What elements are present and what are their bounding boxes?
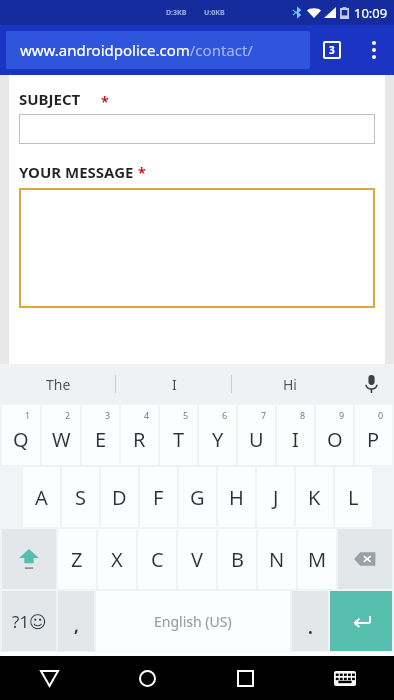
- staticText: 3: [329, 43, 335, 57]
- button[interactable]: Backspace: [338, 529, 392, 589]
- staticText: W: [52, 426, 71, 453]
- staticText: SUBJECT: [19, 89, 85, 109]
- staticText: Hi: [283, 375, 297, 394]
- staticText: 0: [378, 409, 384, 421]
- button[interactable]: B: [218, 529, 256, 589]
- button[interactable]: 7: [238, 405, 275, 465]
- button[interactable]: M: [298, 529, 336, 589]
- staticText: 5: [183, 409, 189, 421]
- staticText: B: [231, 546, 244, 573]
- staticText: A: [35, 484, 48, 511]
- button[interactable]: www.androidpolice.com/contact/: [6, 31, 310, 69]
- staticText: R: [133, 426, 146, 453]
- button[interactable]: Shift: [2, 529, 56, 589]
- staticText: F: [153, 484, 164, 511]
- button[interactable]: [19, 114, 375, 144]
- button[interactable]: I: [116, 364, 232, 404]
- staticText: E: [95, 426, 107, 453]
- staticText: K: [308, 484, 321, 511]
- staticText: N: [269, 546, 285, 573]
- staticText: 9: [339, 409, 345, 421]
- button[interactable]: Keyboard: [295, 656, 394, 700]
- staticText: P: [367, 426, 380, 453]
- button[interactable]: 0: [355, 405, 392, 465]
- staticText: 4: [144, 409, 150, 421]
- staticText: ?1☺: [12, 610, 47, 633]
- staticText: ,: [74, 614, 79, 637]
- button[interactable]: Voice input: [348, 364, 394, 404]
- button[interactable]: N: [258, 529, 296, 589]
- staticText: .: [308, 616, 313, 639]
- staticText: *: [138, 163, 146, 182]
- button[interactable]: S: [62, 467, 99, 527]
- staticText: 8: [300, 409, 306, 421]
- staticText: 2: [65, 409, 71, 421]
- staticText: L: [348, 484, 359, 511]
- button[interactable]: 1: [2, 405, 40, 465]
- staticText: The: [46, 375, 71, 394]
- button[interactable]: F: [140, 467, 177, 527]
- button[interactable]: 3: [82, 405, 119, 465]
- button[interactable]: The: [0, 364, 116, 404]
- staticText: I: [172, 375, 177, 394]
- button[interactable]: 4: [121, 405, 158, 465]
- button[interactable]: Tabs: [310, 28, 354, 72]
- button[interactable]: X: [98, 529, 136, 589]
- button[interactable]: Z: [58, 529, 96, 589]
- staticText: X: [111, 546, 123, 573]
- staticText: Q: [13, 426, 29, 453]
- button[interactable]: L: [335, 467, 372, 527]
- button[interactable]: Recents: [196, 656, 295, 700]
- staticText: YOUR MESSAGE: [19, 162, 138, 182]
- staticText: V: [191, 546, 203, 573]
- button[interactable]: Back: [0, 656, 98, 700]
- button[interactable]: Home: [98, 656, 196, 700]
- button[interactable]: Hi: [232, 364, 348, 404]
- button[interactable]: More options: [354, 30, 394, 70]
- button[interactable]: J: [257, 467, 294, 527]
- staticText: M: [308, 546, 327, 573]
- staticText: Y: [212, 426, 224, 453]
- staticText: O: [327, 426, 343, 453]
- staticText: 10:09: [354, 4, 388, 22]
- staticText: S: [75, 484, 86, 511]
- staticText: 6: [222, 409, 228, 421]
- button[interactable]: G: [179, 467, 216, 527]
- button[interactable]: .: [292, 591, 328, 651]
- button[interactable]: 2: [42, 405, 80, 465]
- button[interactable]: [19, 188, 375, 308]
- staticText: J: [273, 484, 279, 511]
- button[interactable]: Enter: [330, 591, 392, 651]
- button[interactable]: C: [138, 529, 176, 589]
- button[interactable]: K: [296, 467, 333, 527]
- staticText: Z: [71, 546, 83, 573]
- button[interactable]: H: [218, 467, 255, 527]
- staticText: 1: [25, 409, 31, 421]
- staticText: *: [101, 92, 109, 111]
- staticText: T: [173, 426, 185, 453]
- staticText: 3: [105, 409, 111, 421]
- button[interactable]: D: [101, 467, 138, 527]
- button[interactable]: V: [178, 529, 216, 589]
- staticText: D: [112, 484, 127, 511]
- staticText: U: [249, 426, 264, 453]
- staticText: G: [190, 484, 205, 511]
- staticText: D:3KB: [166, 8, 187, 18]
- button[interactable]: 8: [277, 405, 314, 465]
- button[interactable]: ,: [58, 591, 94, 651]
- button[interactable]: 9: [316, 405, 353, 465]
- button[interactable]: English (US): [96, 591, 290, 651]
- staticText: H: [229, 484, 244, 511]
- button[interactable]: 6: [199, 405, 236, 465]
- button[interactable]: 5: [160, 405, 197, 465]
- staticText: U:0KB: [204, 8, 225, 18]
- button[interactable]: ?1☺: [2, 591, 56, 651]
- staticText: English (US): [154, 612, 232, 631]
- button[interactable]: A: [23, 467, 60, 527]
- staticText: www.androidpolice.com/contact/: [20, 40, 253, 60]
- staticText: C: [151, 546, 164, 573]
- staticText: I: [292, 426, 299, 453]
- staticText: 7: [261, 409, 267, 421]
